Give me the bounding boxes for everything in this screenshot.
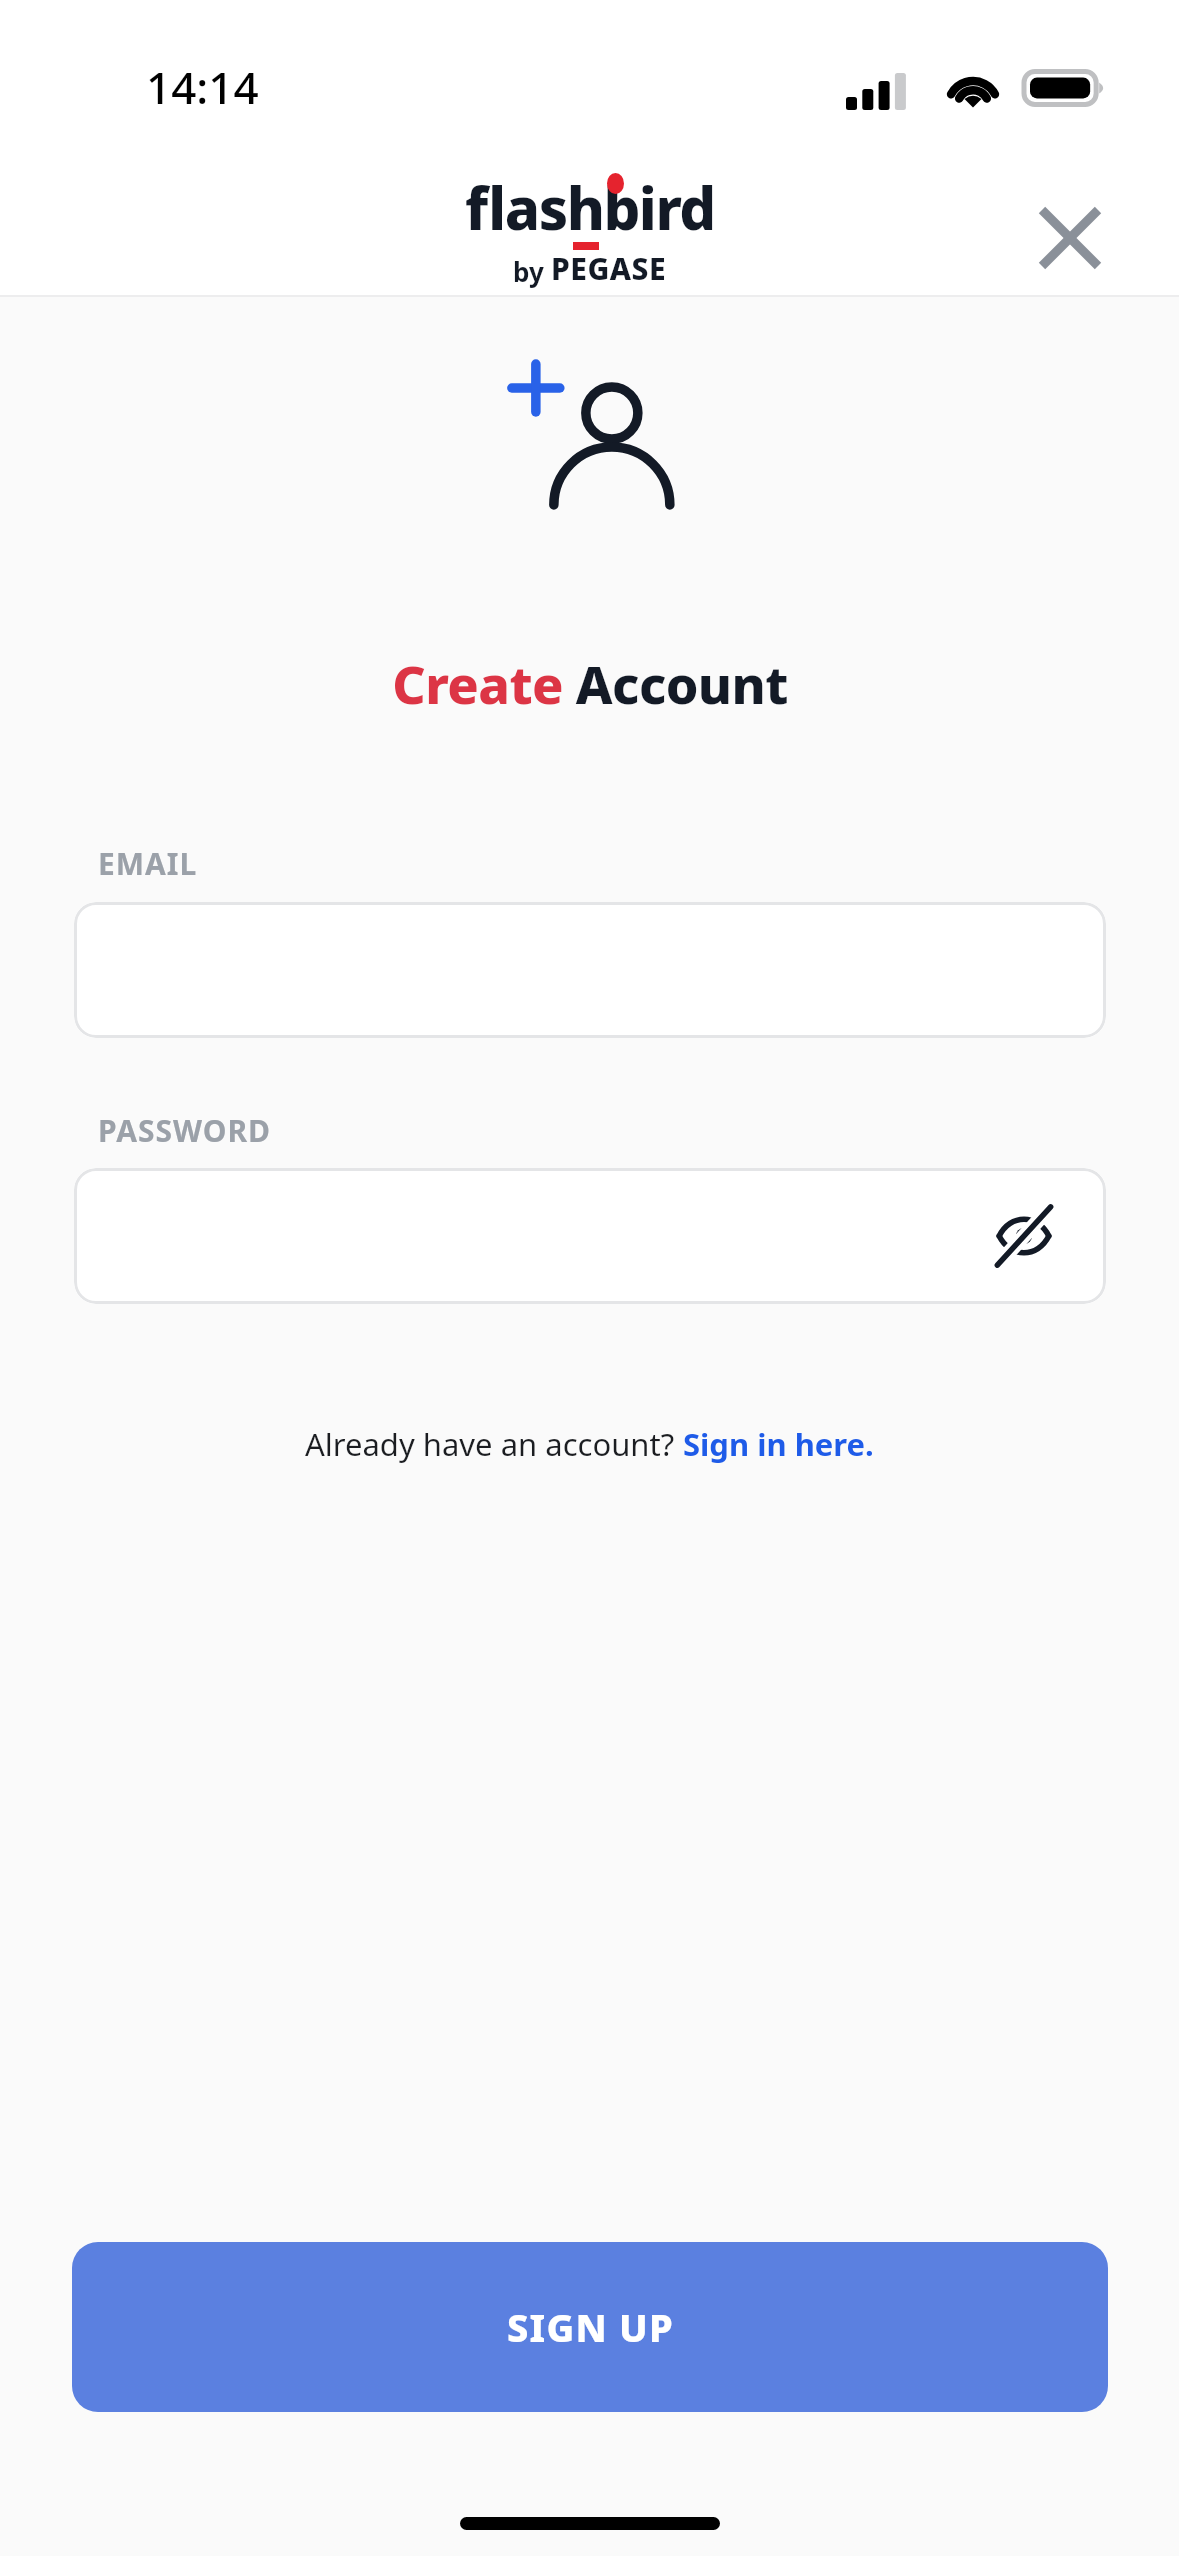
staticText: PASSWORD <box>98 1110 272 1151</box>
button[interactable]: Close <box>1020 188 1120 288</box>
staticText: Already have an account? <box>305 1423 683 1465</box>
button[interactable]: Show password <box>74 1168 1106 1304</box>
staticText: Sign in here. <box>683 1423 874 1465</box>
staticText: SIGN UP <box>507 2301 674 2353</box>
button[interactable]: Show password <box>978 1190 1070 1282</box>
button[interactable]: SIGN UP <box>72 2242 1108 2412</box>
staticText: by <box>513 254 551 289</box>
button[interactable]: Sign in here. <box>683 1423 874 1465</box>
staticText: PEGASE <box>551 248 667 289</box>
button[interactable] <box>74 902 1106 1038</box>
staticText: flashbird <box>465 168 715 247</box>
staticText: Create Account <box>392 648 788 719</box>
staticText: 14:14 <box>146 57 259 117</box>
staticText: EMAIL <box>98 843 198 884</box>
